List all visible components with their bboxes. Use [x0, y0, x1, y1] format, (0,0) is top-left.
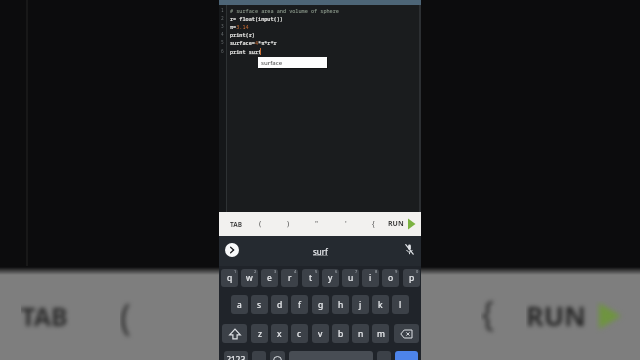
button[interactable]: v	[312, 324, 329, 343]
staticText: 3	[221, 23, 224, 29]
button[interactable]: surface	[258, 57, 327, 68]
staticText: k	[378, 299, 383, 311]
button[interactable]: '	[339, 212, 353, 236]
staticText: j	[359, 299, 362, 311]
button[interactable]: {	[366, 212, 380, 236]
button[interactable]: TAB	[225, 212, 247, 236]
button[interactable]	[394, 324, 419, 343]
staticText: 1	[234, 269, 237, 274]
button[interactable]: w	[241, 269, 258, 287]
staticText: 8	[375, 269, 378, 274]
staticText: y	[328, 272, 333, 284]
button[interactable]: u	[342, 269, 359, 287]
staticText: 6	[221, 48, 224, 54]
staticText: f	[298, 299, 301, 311]
staticText: l	[399, 299, 402, 311]
button[interactable]: j	[352, 295, 369, 314]
staticText: '	[345, 219, 347, 229]
button[interactable]: b	[332, 324, 349, 343]
staticText: e	[267, 272, 272, 284]
staticText: n	[358, 328, 364, 340]
button[interactable]: RUN	[384, 212, 421, 236]
button[interactable]: i	[362, 269, 379, 287]
button[interactable]: ?123	[224, 351, 248, 360]
staticText: 4	[294, 269, 297, 274]
staticText: surface	[261, 59, 283, 67]
button[interactable]: o	[382, 269, 399, 287]
button[interactable]: q	[221, 269, 238, 287]
button[interactable]: g	[312, 295, 329, 314]
staticText: t	[309, 272, 313, 284]
button[interactable]: f	[291, 295, 308, 314]
button[interactable]: r	[281, 269, 298, 287]
button[interactable]	[395, 351, 418, 360]
staticText: 2	[221, 15, 224, 21]
staticText: v	[318, 328, 323, 340]
staticText: # surface area and volume of sphere	[230, 7, 339, 14]
button[interactable]	[225, 243, 239, 257]
button[interactable]	[270, 351, 285, 360]
button[interactable]: y	[322, 269, 339, 287]
button[interactable]: l	[392, 295, 409, 314]
button[interactable]: p	[403, 269, 420, 287]
staticText: 0	[416, 269, 419, 274]
staticText: r	[288, 272, 292, 284]
staticText: print surf	[230, 48, 262, 55]
staticText: b	[338, 328, 344, 340]
staticText: ?123	[227, 354, 246, 360]
staticText: 1	[221, 7, 224, 13]
staticText: u	[348, 272, 354, 284]
staticText: 2	[254, 269, 257, 274]
staticText: p	[409, 272, 415, 284]
staticText: surf	[313, 246, 328, 257]
staticText: 5	[315, 269, 318, 274]
button[interactable]: z	[251, 324, 268, 343]
staticText: w	[246, 272, 253, 284]
button[interactable]: (	[253, 212, 267, 236]
staticText: print(r)	[230, 31, 255, 38]
button[interactable]: m	[372, 324, 389, 343]
staticText: 7	[355, 269, 358, 274]
staticText: q	[227, 272, 233, 284]
staticText: 6	[335, 269, 338, 274]
button[interactable]: ,	[252, 351, 266, 360]
button[interactable]: t	[302, 269, 319, 287]
staticText: (	[120, 292, 131, 341]
staticText: 4	[221, 31, 224, 37]
button[interactable]: x	[271, 324, 288, 343]
button[interactable]: e	[261, 269, 278, 287]
staticText: TAB	[21, 299, 68, 333]
button[interactable]: n	[352, 324, 369, 343]
staticText: RUN	[388, 219, 404, 229]
button[interactable]: .	[377, 351, 391, 360]
staticText: TAB	[230, 220, 243, 229]
staticText: (	[259, 219, 262, 229]
button[interactable]: s	[251, 295, 268, 314]
staticText: s	[257, 299, 262, 311]
staticText: π=3.14	[230, 23, 249, 30]
button[interactable]: h	[332, 295, 349, 314]
button[interactable]: )	[281, 212, 295, 236]
button[interactable]: k	[372, 295, 389, 314]
staticText: d	[277, 299, 283, 311]
staticText: {	[481, 290, 494, 336]
staticText: r= float(input())	[230, 15, 283, 22]
staticText: RUN	[526, 297, 587, 334]
staticText: 5	[221, 39, 224, 45]
staticText: h	[338, 299, 344, 311]
staticText: {	[372, 219, 375, 229]
button[interactable]: c	[291, 324, 308, 343]
staticText: g	[318, 299, 324, 311]
button[interactable]: a	[231, 295, 248, 314]
staticText: )	[287, 219, 290, 229]
staticText: a	[237, 299, 242, 311]
staticText: z	[258, 328, 262, 340]
button[interactable]: d	[271, 295, 288, 314]
button[interactable]: "	[310, 212, 324, 236]
staticText: m	[377, 328, 385, 340]
button[interactable]	[222, 324, 247, 343]
staticText: c	[297, 328, 302, 340]
